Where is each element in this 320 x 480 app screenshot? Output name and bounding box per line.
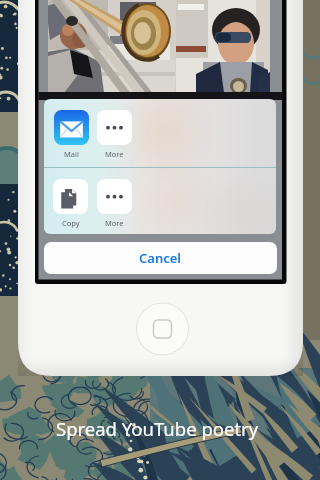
other: More options (97, 179, 132, 214)
other: Copy (53, 179, 88, 214)
button[interactable]: More options (97, 179, 132, 228)
button[interactable]: Home (136, 303, 189, 356)
other: More options (97, 110, 132, 145)
button[interactable]: Mail (54, 110, 89, 159)
staticText: More (105, 149, 124, 159)
button[interactable]: More options (97, 110, 132, 159)
staticText: Mail (64, 149, 79, 159)
other: Mail (54, 110, 89, 145)
button[interactable]: Cancel (44, 242, 277, 274)
button[interactable]: Copy (53, 179, 88, 228)
staticText: More (105, 218, 124, 228)
staticText: Spread YouTube poetry (56, 416, 259, 441)
staticText: Copy (62, 218, 80, 228)
staticText: Cancel (139, 249, 182, 267)
